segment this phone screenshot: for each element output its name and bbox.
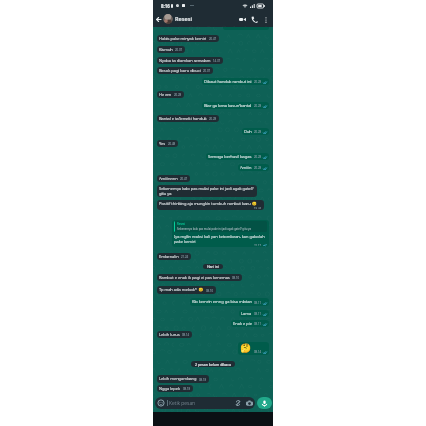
staticText: Klo kemrin emng ga bisa mlatan — [192, 299, 252, 305]
staticText: Biar ga kena kasur/bantal — [204, 103, 252, 108]
staticText: Lama — [241, 311, 252, 316]
button[interactable]: Emoji — [155, 397, 255, 409]
button[interactable]: Resesi — [172, 220, 269, 247]
button[interactable]: Emoji — [157, 399, 165, 407]
button[interactable]: 2 pesan belum dibaca — [191, 361, 235, 367]
staticText: 21.17 — [254, 244, 262, 246]
button[interactable]: Enak e pie — [231, 320, 269, 327]
button[interactable]: Sebenernya kalo pas mulai pake ini jadi … — [157, 185, 257, 197]
staticText: 08.18 — [183, 387, 191, 391]
staticText: Kismuh — [159, 47, 173, 52]
button[interactable]: Lama — [239, 310, 269, 317]
staticText: Yes — [159, 141, 166, 146]
staticText: Amiiin — [240, 165, 252, 170]
staticText: Nyoba ta diamkan semalam — [159, 58, 211, 63]
button[interactable]: Biar ga kena kasur/bantal — [202, 102, 269, 109]
staticText: Sebenernya kalo pas mulai pake ini jadi … — [177, 227, 251, 231]
button[interactable]: More options — [261, 15, 270, 24]
button[interactable]: Lebih mengambang — [157, 375, 209, 383]
staticText: 08.18 — [199, 378, 207, 382]
staticText: Resesi — [175, 15, 192, 23]
button[interactable]: Call — [249, 14, 260, 25]
staticText: 20.28 — [209, 117, 217, 121]
button[interactable]: Camera — [245, 399, 253, 407]
staticText: 20.47 — [209, 37, 217, 41]
staticText: 08.11 — [254, 312, 262, 316]
staticText: 08.10 — [206, 289, 214, 293]
staticText: 08.11 — [254, 322, 262, 326]
button[interactable]: Dibaut handuk rambut ini — [202, 78, 269, 85]
staticText: 08.10 — [232, 276, 240, 280]
staticText: 🤔 — [240, 343, 252, 354]
staticText: 20.28 — [174, 93, 182, 97]
staticText: Rambut e enak ik pagi ei pas kenemas — [159, 275, 230, 280]
button[interactable]: Hari ini — [203, 264, 223, 269]
staticText: Embenalin — [159, 254, 179, 259]
button[interactable]: Semoga berhasil bagas — [206, 153, 269, 160]
staticText: 20.28 — [254, 130, 262, 134]
staticText: Lebih mengambang — [159, 376, 197, 382]
button[interactable]: Attach — [234, 399, 242, 407]
staticText: 20.47 — [180, 177, 188, 181]
staticText: Lebih lurus — [159, 332, 180, 337]
staticText: Semoga berhasil bagas — [208, 154, 252, 159]
staticText: 20.28 — [254, 155, 262, 159]
staticText: Sebenernya kalo pas mulai pake ini jadi … — [159, 186, 254, 196]
staticText: 20.07 — [175, 48, 183, 52]
staticText: Hari ini — [207, 264, 219, 269]
staticText: Dibaut handuk rambut ini — [204, 79, 252, 84]
button[interactable]: Klo kemrin emng ga bisa mlatan — [190, 298, 269, 306]
staticText: Resesi — [177, 222, 185, 226]
staticText: 14.37 — [213, 59, 221, 63]
button[interactable]: Ngga lepek — [157, 385, 193, 392]
staticText: Besok pagi baru dicuci — [159, 68, 201, 73]
button[interactable]: Voice message — [257, 397, 272, 409]
staticText: Tp mah ada roebok* 😊 — [159, 287, 204, 293]
staticText: 2 pesan belum dibaca — [195, 362, 231, 367]
button[interactable]: Kismuh — [157, 46, 185, 53]
button[interactable]: Lebih lurus — [157, 331, 192, 338]
button[interactable]: Tp mah ada roebok* 😊 — [157, 286, 216, 294]
button[interactable]: Amiiin — [238, 164, 269, 171]
staticText: Iya mglin reaksi kali yan ketombean, kan… — [174, 234, 265, 244]
staticText: Duh — [244, 129, 252, 134]
button[interactable]: Video call — [237, 14, 248, 25]
button[interactable]: Profile photo — [163, 14, 173, 24]
staticText: Enak e pie — [233, 321, 252, 326]
button[interactable]: Amiiinnnn — [157, 175, 190, 182]
staticText: 8:16 — [161, 3, 170, 9]
staticText: 20.28 — [254, 104, 262, 108]
button[interactable]: 🤔 — [238, 342, 269, 355]
staticText: 20.48 — [168, 142, 176, 146]
staticText: Amiiinnnn — [159, 176, 178, 181]
button[interactable]: Positif thinking aja mungkin tumbuh ramb… — [157, 200, 264, 210]
button[interactable]: Back — [155, 16, 162, 23]
button[interactable]: Bantal e ta'lemeki handuk — [157, 115, 219, 122]
staticText: Habis pake minyak kemiri — [159, 36, 207, 41]
button[interactable]: Yes — [157, 140, 178, 147]
button[interactable]: Nyoba ta diamkan semalam — [157, 57, 223, 64]
button[interactable]: He em — [157, 91, 184, 98]
staticText: 20.07 — [203, 69, 211, 73]
staticText: Ketik pesan — [169, 400, 196, 407]
staticText: Positif thinking aja mungkin tumbuh ramb… — [159, 201, 257, 207]
button[interactable]: Habis pake minyak kemiri — [157, 35, 219, 42]
button[interactable]: Embenalin — [157, 253, 191, 260]
staticText: 08.14 — [254, 350, 262, 354]
staticText: 08.11 — [254, 301, 262, 305]
staticText: 20.28 — [254, 80, 262, 84]
staticText: 08.14 — [182, 333, 190, 337]
staticText: Bantal e ta'lemeki handuk — [159, 116, 207, 121]
button[interactable]: Duh — [242, 128, 269, 135]
staticText: 20.28 — [254, 166, 262, 170]
staticText: 19.44 — [254, 207, 262, 209]
staticText: Ngga lepek — [159, 386, 181, 391]
button[interactable]: Rambut e enak ik pagi ei pas kenemas — [157, 274, 242, 281]
button[interactable]: Besok pagi baru dicuci — [157, 67, 213, 74]
staticText: He em — [159, 92, 172, 97]
staticText: 21.24 — [181, 255, 189, 259]
